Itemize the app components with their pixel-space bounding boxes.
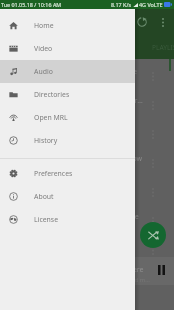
- staticText: PLAYLISTS: [152, 43, 174, 52]
- button[interactable]: Refresh: [132, 12, 152, 32]
- button[interactable]: Track options: [146, 214, 160, 228]
- staticText: Open MRL: [34, 113, 68, 122]
- button[interactable]: Home: [0, 14, 135, 37]
- staticText: Tue 01.05.18 / 10:16 AM: [1, 1, 62, 8]
- button[interactable]: PLAYLISTS: [144, 36, 174, 58]
- staticText: Yet another long track title example her…: [5, 212, 139, 222]
- button[interactable]: About: [0, 185, 135, 208]
- staticText: License: [34, 215, 59, 224]
- staticText: Directories: [34, 90, 70, 99]
- staticText: Unknown artist - Unknown album: [5, 135, 100, 143]
- button[interactable]: Audio: [0, 60, 135, 83]
- button[interactable]: ALBUMS: [81, 36, 144, 58]
- staticText: Audio: [34, 67, 53, 76]
- staticText: 4G VoLTE: [139, 1, 163, 8]
- staticText: Unknown track with a long title name her…: [4, 265, 144, 275]
- staticText: Unknown artist - Unknown album: [5, 222, 100, 230]
- button[interactable]: More options: [153, 12, 173, 32]
- staticText: Short one with a longer title appended: [5, 183, 132, 193]
- button[interactable]: Some track with an extended title line: [0, 119, 174, 148]
- button[interactable]: History: [0, 129, 135, 152]
- button[interactable]: Unknown track with a long title name her…: [0, 257, 174, 285]
- button[interactable]: ARTISTS: [18, 36, 81, 58]
- button[interactable]: Directories: [0, 83, 135, 106]
- button[interactable]: Short one with a longer title appended: [0, 177, 174, 206]
- button[interactable]: Pause: [152, 261, 170, 279]
- staticText: Unknown artist - Unknown album name here…: [4, 276, 153, 284]
- staticText: About: [34, 192, 54, 201]
- button[interactable]: Another song with a very long name here …: [0, 90, 174, 119]
- staticText: Video: [34, 44, 53, 53]
- button[interactable]: Track options: [146, 243, 160, 257]
- button[interactable]: A very long song title goes right here n…: [0, 148, 174, 177]
- staticText: 8.17 K/s: [111, 1, 132, 8]
- button[interactable]: License: [0, 208, 135, 231]
- button[interactable]: Track one that has a fairly long title h…: [0, 61, 174, 90]
- staticText: Artist name - Album name here: [5, 193, 94, 201]
- staticText: Home: [34, 21, 54, 30]
- staticText: History: [34, 136, 58, 145]
- staticText: Another song with a very long name here …: [5, 96, 146, 106]
- button[interactable]: Open MRL: [0, 106, 135, 129]
- staticText: Preferences: [34, 169, 73, 178]
- button[interactable]: Preferences: [0, 162, 135, 185]
- staticText: ARTISTS: [37, 43, 63, 52]
- button[interactable]: Final track in the visible list of songs: [0, 235, 174, 264]
- staticText: A very long song title goes right here n…: [5, 154, 143, 164]
- staticText: Unknown artist - Unknown album: [5, 77, 100, 85]
- staticText: Unknown artist - Unknown album: [5, 164, 100, 172]
- staticText: Track one that has a fairly long title h…: [5, 67, 137, 77]
- button[interactable]: Yet another long track title example her…: [0, 206, 174, 235]
- button[interactable]: Shuffle: [140, 222, 166, 248]
- button[interactable]: Video: [0, 37, 135, 60]
